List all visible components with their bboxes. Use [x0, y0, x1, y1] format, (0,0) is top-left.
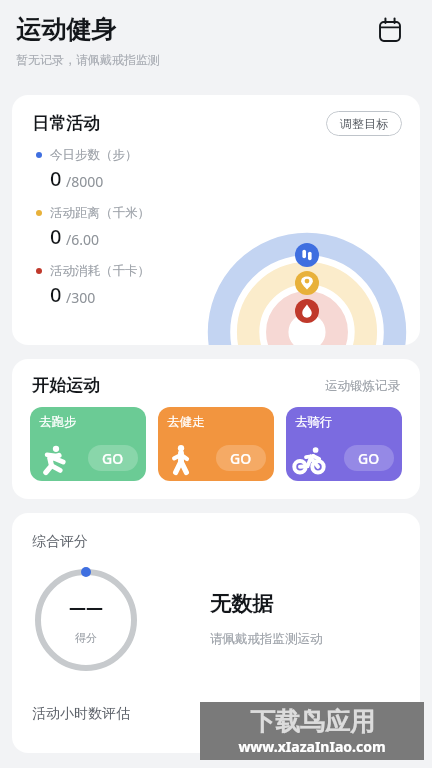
staticText: 今日步数（步）: [50, 147, 138, 163]
staticText: 暂无记录，请佩戴戒指监测: [16, 52, 160, 67]
staticText: 日常活动: [32, 113, 100, 134]
staticText: 0: [50, 223, 62, 250]
staticText: 综合评分: [32, 533, 88, 551]
staticText: 下载鸟应用: [250, 706, 375, 737]
staticText: /6.00: [66, 230, 99, 249]
staticText: 去跑步: [39, 414, 77, 430]
button[interactable]: Calendar: [370, 10, 410, 50]
staticText: www.xIazaInIao.com: [238, 737, 386, 756]
button[interactable]: 调整目标: [326, 111, 402, 136]
staticText: 活动距离（千米）: [50, 205, 150, 221]
button[interactable]: 去健走: [158, 407, 274, 481]
staticText: /300: [66, 288, 96, 307]
staticText: 活动消耗（千卡）: [50, 263, 150, 279]
staticText: 运动锻炼记录: [325, 378, 400, 394]
staticText: 请佩戴戒指监测运动: [210, 631, 323, 647]
staticText: 调整目标: [340, 116, 388, 131]
staticText: GO: [102, 449, 124, 468]
button[interactable]: 去骑行: [286, 407, 402, 481]
staticText: 无数据: [210, 591, 273, 617]
staticText: GO: [358, 449, 380, 468]
staticText: 开始运动: [32, 375, 100, 396]
staticText: 0: [50, 165, 62, 192]
staticText: 去健走: [167, 414, 205, 430]
staticText: GO: [230, 449, 252, 468]
staticText: /8000: [66, 172, 104, 191]
staticText: 去骑行: [295, 414, 333, 430]
staticText: ——: [69, 596, 103, 619]
button[interactable]: 运动锻炼记录: [325, 378, 400, 394]
staticText: 0: [50, 281, 62, 308]
button[interactable]: 去跑步: [30, 407, 146, 481]
staticText: 运动健身: [16, 14, 116, 45]
staticText: 活动小时数评估: [32, 705, 130, 723]
staticText: 得分: [75, 631, 97, 645]
